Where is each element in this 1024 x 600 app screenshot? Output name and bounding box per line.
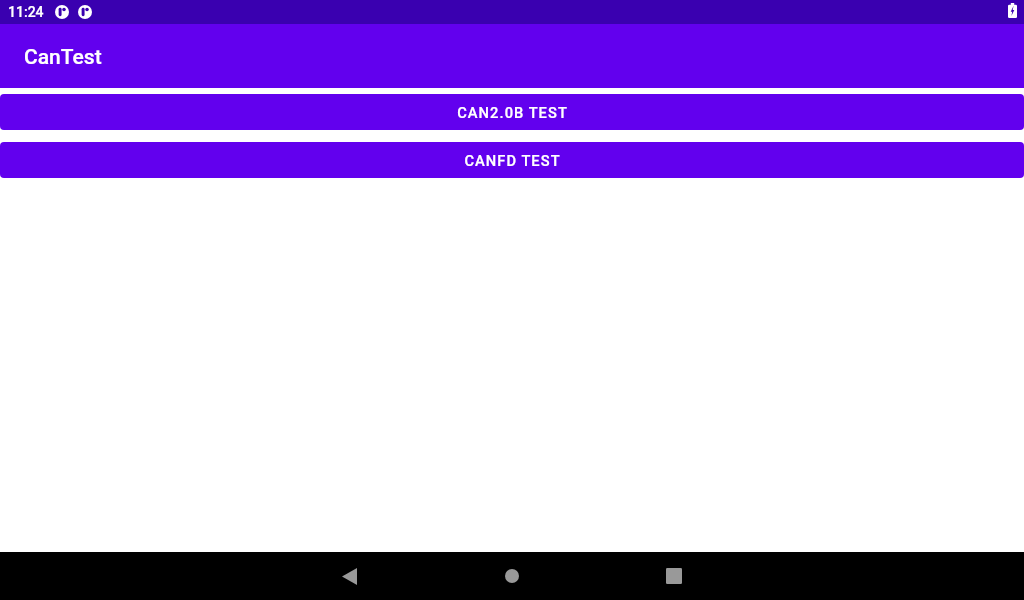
staticText: 11:24 [8,4,44,20]
staticText: CANFD TEST [464,152,561,169]
button[interactable]: CANFD TEST [0,142,1024,178]
button[interactable]: Recent apps [650,552,698,600]
button[interactable]: Back [325,552,373,600]
staticText: CAN2.0B TEST [457,104,568,121]
button[interactable]: Home [488,552,536,600]
button[interactable]: CAN2.0B TEST [0,94,1024,130]
staticText: CanTest [24,45,102,70]
